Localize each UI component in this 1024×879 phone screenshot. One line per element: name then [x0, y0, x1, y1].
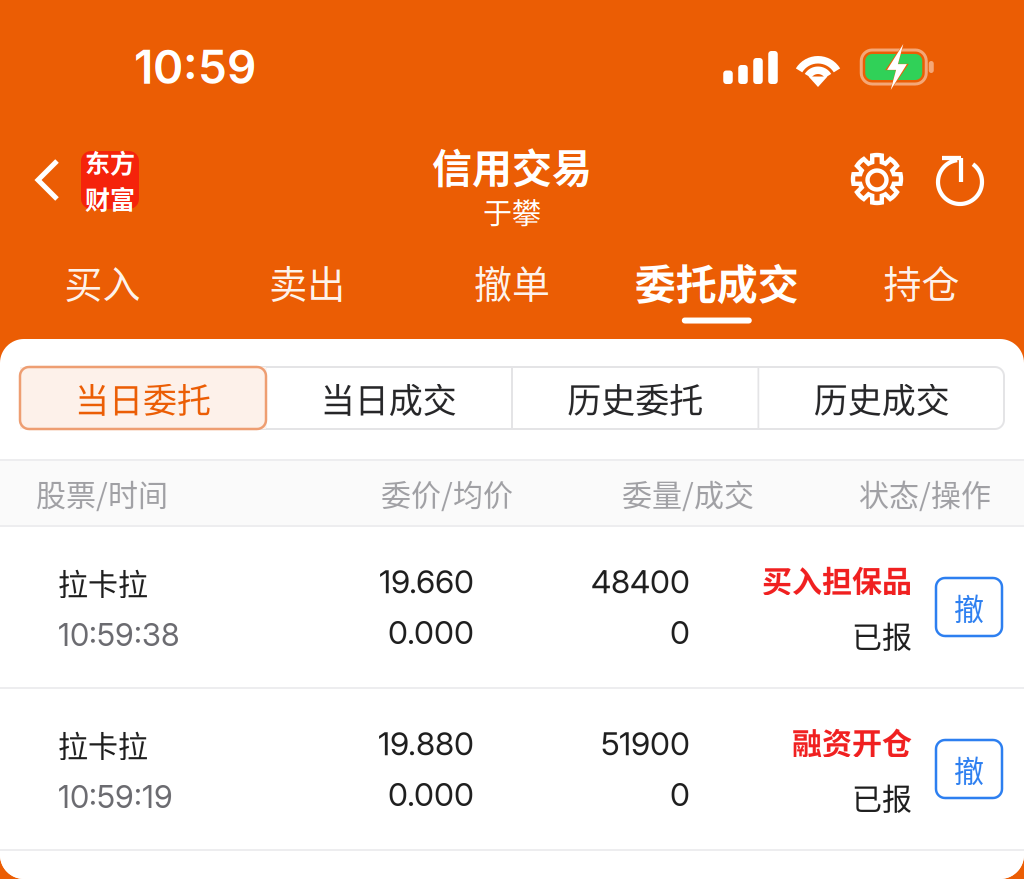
button[interactable]: Settings — [850, 153, 904, 207]
button[interactable]: Refresh — [936, 151, 992, 209]
staticText: 股票/时间 — [36, 471, 168, 515]
button[interactable]: Back — [0, 151, 139, 209]
staticText: 10:59 — [134, 39, 256, 95]
button[interactable]: 撤 — [936, 740, 1002, 798]
staticText: 历史委托 — [567, 373, 703, 423]
staticText: 0.000 — [388, 775, 474, 814]
staticText: 卖出 — [269, 254, 345, 309]
staticText: 买入担保品 — [762, 558, 912, 601]
staticText: 19.660 — [379, 562, 474, 601]
button[interactable]: 撤单 — [410, 245, 614, 333]
button[interactable]: 持仓 — [819, 245, 1024, 333]
button[interactable]: 委托成交 — [614, 245, 819, 333]
staticText: 0 — [670, 613, 690, 652]
staticText: 于攀 — [483, 190, 541, 232]
button[interactable]: 当日委托 — [20, 367, 264, 429]
staticText: 拉卡拉 — [58, 561, 148, 604]
staticText: 持仓 — [884, 254, 960, 309]
staticText: 融资开仓 — [792, 720, 912, 763]
staticText: 买入 — [64, 254, 140, 309]
staticText: 0.000 — [388, 613, 474, 652]
button[interactable]: 历史成交 — [759, 367, 1004, 429]
staticText: 委托成交 — [635, 252, 799, 311]
button[interactable]: 拉卡拉 — [0, 527, 1024, 687]
staticText: 当日委托 — [75, 373, 211, 423]
button[interactable]: 拉卡拉 — [0, 689, 1024, 849]
button[interactable]: 当日委托 — [20, 367, 266, 429]
button[interactable]: 历史委托 — [513, 367, 757, 429]
staticText: 撤 — [954, 747, 984, 791]
staticText: 0 — [670, 775, 690, 814]
staticText: 东方 — [85, 144, 135, 180]
button[interactable]: 买入 — [0, 245, 205, 333]
staticText: 委价/均价 — [381, 471, 513, 515]
staticText: 撤单 — [474, 254, 550, 309]
staticText: 48400 — [591, 562, 690, 601]
button[interactable]: 撤 — [936, 578, 1002, 636]
staticText: 已报 — [852, 613, 912, 656]
staticText: 财富 — [85, 180, 135, 216]
staticText: 51900 — [601, 724, 690, 763]
staticText: 10:59:38 — [58, 616, 180, 653]
staticText: 当日委托 — [74, 373, 210, 423]
button[interactable]: 当日成交 — [266, 367, 511, 429]
staticText: 状态/操作 — [859, 471, 991, 515]
button[interactable]: 卖出 — [205, 245, 410, 333]
staticText: 10:59:19 — [58, 778, 173, 815]
staticText: 19.880 — [378, 724, 474, 763]
staticText: 已报 — [852, 775, 912, 818]
staticText: 拉卡拉 — [58, 723, 148, 766]
staticText: 当日成交 — [321, 373, 457, 423]
staticText: 历史成交 — [814, 373, 950, 423]
staticText: 委量/成交 — [622, 471, 754, 515]
staticText: 信用交易 — [432, 136, 592, 194]
staticText: 撤 — [954, 585, 984, 629]
